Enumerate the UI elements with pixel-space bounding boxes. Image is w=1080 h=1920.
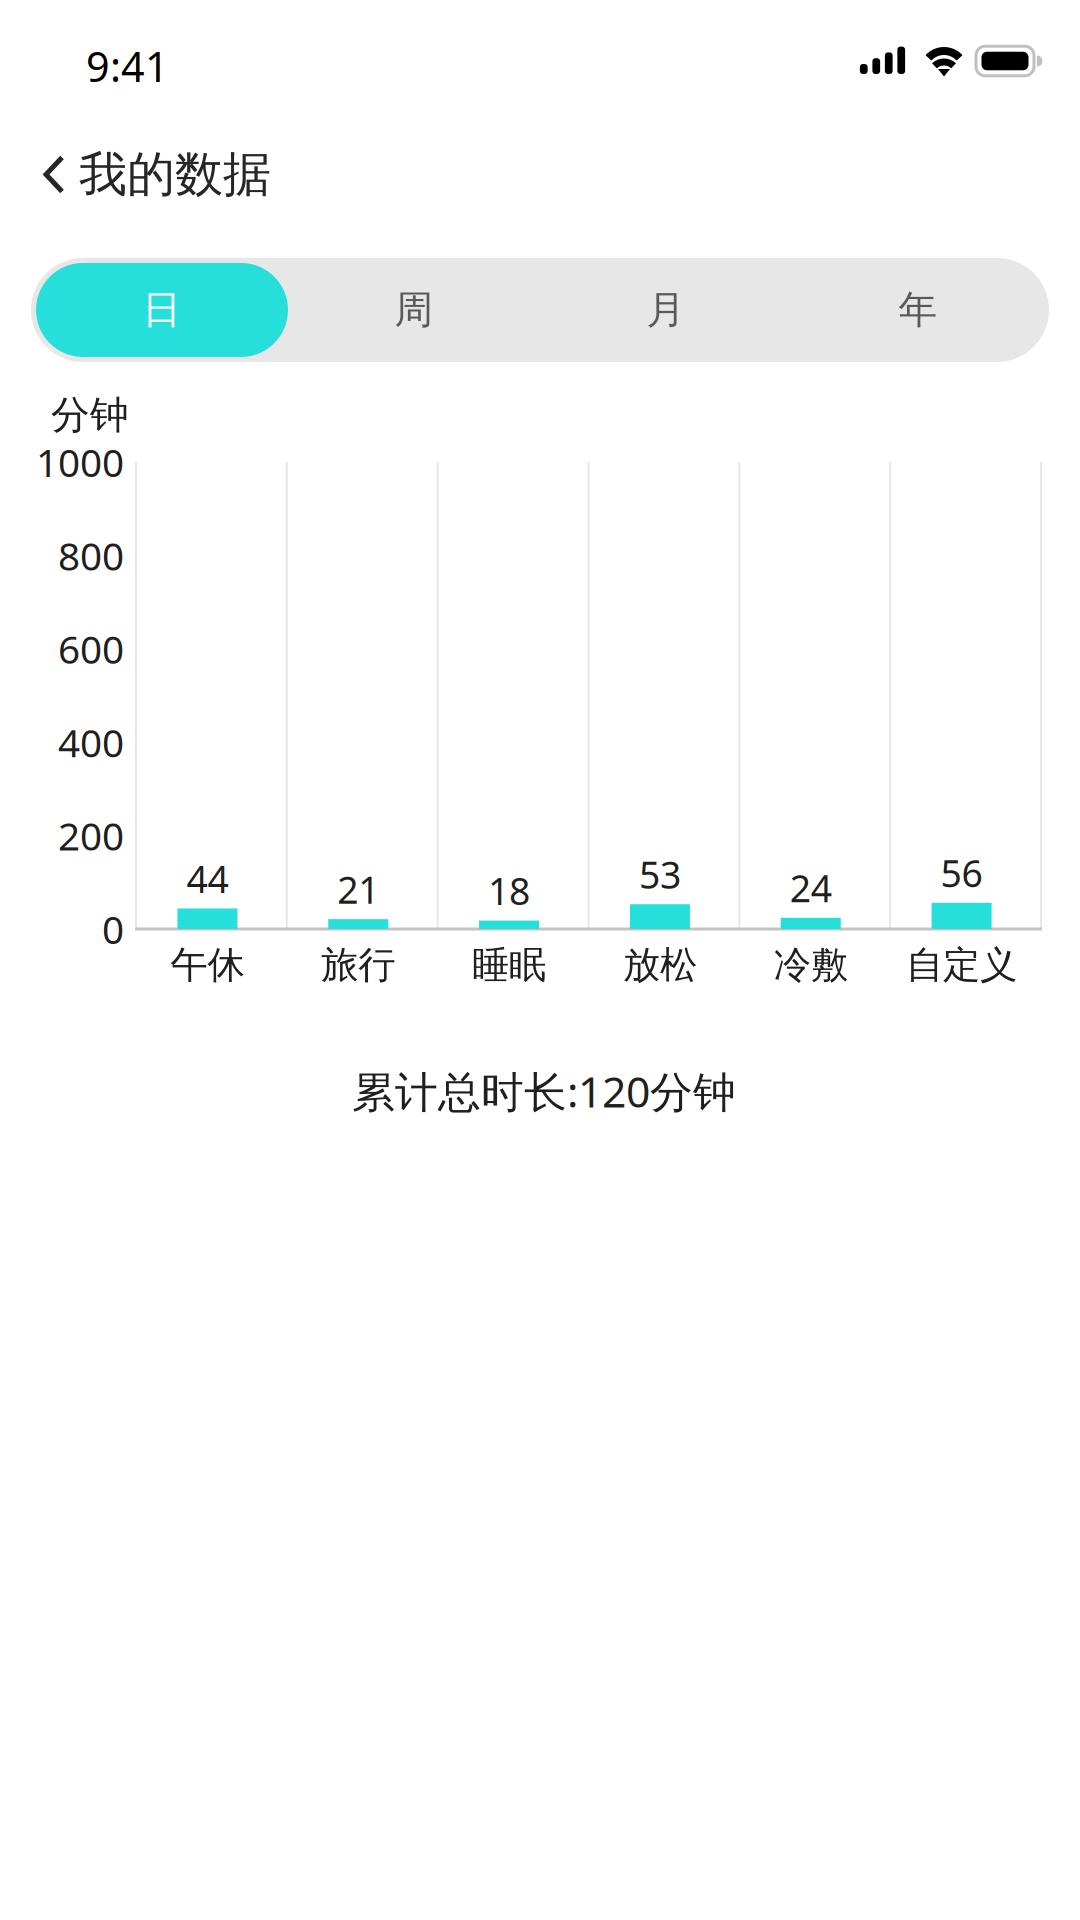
staticText: 400 xyxy=(58,716,124,768)
staticText: 200 xyxy=(58,810,124,861)
staticText: 21 xyxy=(337,864,379,914)
button[interactable]: 日 xyxy=(36,263,288,357)
staticText: 睡眠 xyxy=(472,942,546,988)
staticText: 600 xyxy=(58,623,124,674)
staticText: 月 xyxy=(646,286,685,334)
staticText: 0 xyxy=(102,903,124,955)
button[interactable]: 周 xyxy=(288,263,540,357)
staticText: 日 xyxy=(142,286,181,334)
staticText: 自定义 xyxy=(906,942,1017,988)
staticText: 24 xyxy=(790,863,832,913)
staticText: 累计总时长:120分钟 xyxy=(352,1063,736,1119)
button[interactable]: 返回 我的数据 xyxy=(0,132,271,217)
staticText: 年 xyxy=(898,286,937,334)
staticText: 放松 xyxy=(623,942,697,988)
staticText: 周 xyxy=(394,286,433,334)
staticText: 9:41 xyxy=(86,39,169,93)
staticText: 800 xyxy=(58,530,124,581)
staticText: 冷敷 xyxy=(774,942,848,988)
staticText: 44 xyxy=(186,854,228,903)
staticText: 1000 xyxy=(36,436,124,488)
button[interactable]: 年 xyxy=(792,263,1044,357)
staticText: 53 xyxy=(639,849,681,899)
staticText: 18 xyxy=(488,866,530,915)
button[interactable]: 月 xyxy=(540,263,792,357)
staticText: 旅行 xyxy=(321,942,395,988)
staticText: 56 xyxy=(941,848,983,898)
staticText: 我的数据 xyxy=(79,145,271,204)
staticText: 午休 xyxy=(170,942,244,988)
staticText: 分钟 xyxy=(51,391,129,439)
